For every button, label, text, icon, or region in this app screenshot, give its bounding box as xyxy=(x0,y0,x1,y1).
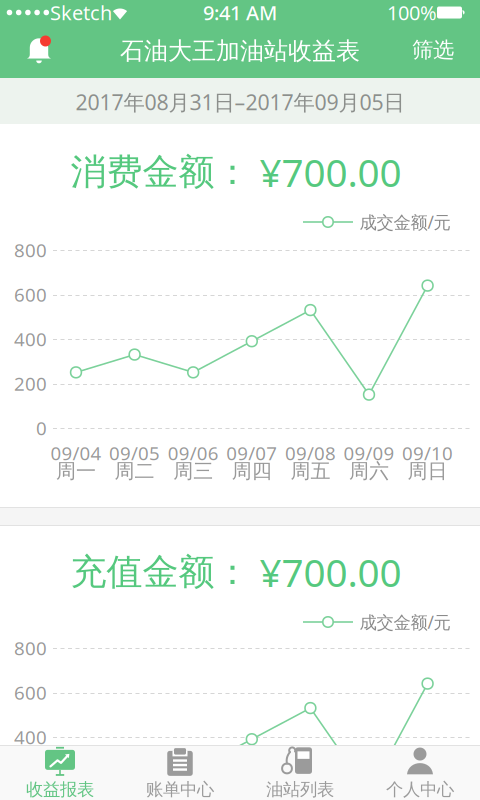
staticText: 个人中心 xyxy=(386,779,454,800)
staticText: 油站列表 xyxy=(266,779,334,800)
staticText: 800 xyxy=(14,636,47,660)
staticText: 周日 xyxy=(408,459,448,483)
staticText: 800 xyxy=(14,238,47,262)
staticText: 2017年08月31日–2017年09月05日 xyxy=(75,88,404,116)
button[interactable]: 通知 xyxy=(17,28,61,72)
button[interactable]: 油站列表 xyxy=(240,745,360,800)
button[interactable]: 收益报表 xyxy=(0,745,120,800)
button[interactable]: 账单中心 xyxy=(120,745,240,800)
staticText: 600 xyxy=(14,282,47,307)
staticText: 09/09 xyxy=(343,441,394,465)
staticText: 400 xyxy=(14,725,47,749)
button[interactable]: 个人中心 xyxy=(360,745,480,800)
staticText: 周二 xyxy=(115,459,155,483)
staticText: 筛选 xyxy=(412,37,454,63)
staticText: 600 xyxy=(14,680,47,705)
staticText: 充值金额： xyxy=(70,550,250,594)
staticText: 消费金额： xyxy=(70,150,250,194)
staticText: 石油大王加油站收益表 xyxy=(120,36,360,66)
staticText: 09/05 xyxy=(109,441,160,465)
staticText: 周五 xyxy=(290,459,330,483)
staticText: 200 xyxy=(14,371,47,396)
staticText: 0 xyxy=(36,416,47,440)
staticText: 周一 xyxy=(56,459,96,483)
staticText: 周三 xyxy=(173,459,213,483)
staticText: Sketch xyxy=(50,0,112,26)
staticText: 周六 xyxy=(349,459,389,483)
staticText: 09/04 xyxy=(50,441,101,465)
staticText: 9:41 AM xyxy=(203,0,277,26)
staticText: ¥700.00 xyxy=(259,546,401,598)
staticText: 09/08 xyxy=(285,441,336,465)
staticText: 收益报表 xyxy=(26,779,94,800)
staticText: 09/07 xyxy=(226,441,277,465)
staticText: 周四 xyxy=(232,459,272,483)
staticText: 100% xyxy=(387,0,437,26)
staticText: 成交金额/元 xyxy=(359,610,450,633)
staticText: ¥700.00 xyxy=(259,146,401,198)
staticText: 400 xyxy=(14,327,47,351)
button[interactable]: 筛选 xyxy=(403,28,463,72)
staticText: 账单中心 xyxy=(146,779,214,800)
staticText: 200 xyxy=(14,769,47,794)
staticText: 09/10 xyxy=(402,441,453,465)
staticText: 09/06 xyxy=(168,441,219,465)
staticText: 成交金额/元 xyxy=(359,210,450,233)
